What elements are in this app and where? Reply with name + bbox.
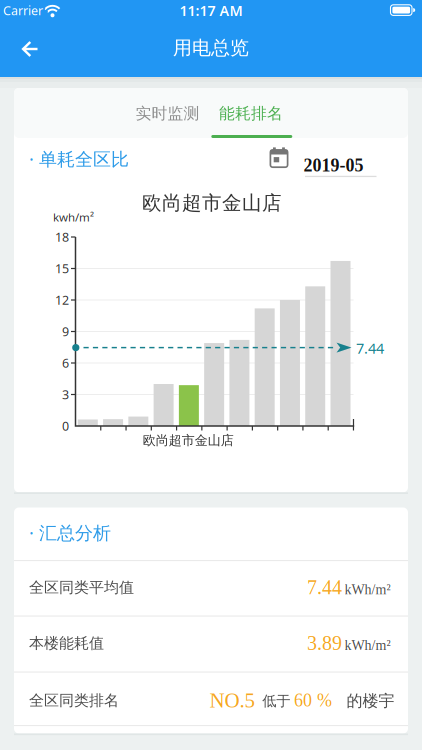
staticText: 低于 xyxy=(262,692,290,710)
staticText: 15 xyxy=(55,260,69,277)
staticText: 9 xyxy=(62,323,69,340)
staticText: 11:17 AM xyxy=(179,1,242,20)
staticText: kWh/m² xyxy=(344,582,390,597)
staticText: 7.44 xyxy=(356,338,384,358)
staticText: · 汇总分析 xyxy=(29,520,111,545)
staticText: 欧尚超市金山店 xyxy=(142,191,282,215)
staticText: 本楼能耗值 xyxy=(29,634,104,653)
staticText: 12 xyxy=(55,291,69,308)
staticText: 7.44 xyxy=(307,576,342,598)
staticText: 3 xyxy=(62,386,69,403)
staticText: 全区同类平均值 xyxy=(29,578,134,597)
staticText: 的楼宇 xyxy=(346,691,394,711)
staticText: 3.89 xyxy=(307,632,342,654)
button[interactable]: 2019-05 xyxy=(270,137,390,182)
staticText: NO.5 xyxy=(209,689,255,712)
staticText: 18 xyxy=(55,228,69,245)
staticText: 能耗排名 xyxy=(219,103,283,123)
staticText: 6 xyxy=(62,354,69,371)
staticText: kWh/m² xyxy=(344,637,390,653)
staticText: · 单耗全区比 xyxy=(29,146,129,171)
staticText: 全区同类排名 xyxy=(29,691,119,710)
staticText: 2019-05 xyxy=(303,155,363,175)
staticText: 欧尚超市金山店 xyxy=(143,432,234,449)
staticText: 60 % xyxy=(294,690,332,710)
staticText: 0 xyxy=(62,417,69,434)
staticText: 用电总览 xyxy=(173,36,249,60)
staticText: 实时监测 xyxy=(135,103,199,123)
button[interactable]: 能耗排名 xyxy=(201,88,301,138)
staticText: kwh/m² xyxy=(53,209,94,225)
button[interactable] xyxy=(7,27,51,71)
staticText: Carrier xyxy=(3,2,43,19)
button[interactable]: 实时监测 xyxy=(117,88,217,138)
